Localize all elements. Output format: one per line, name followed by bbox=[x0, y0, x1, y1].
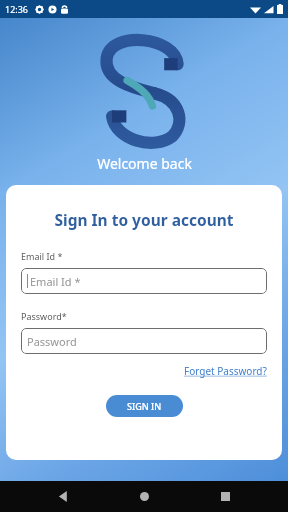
button[interactable]: Back bbox=[45, 481, 81, 512]
staticText: 12:36 bbox=[5, 3, 29, 15]
button[interactable]: Recent apps bbox=[207, 481, 243, 512]
button[interactable]: Password bbox=[21, 328, 267, 354]
staticText: Email Id * bbox=[21, 250, 63, 262]
staticText: SIGN IN bbox=[127, 400, 162, 412]
staticText: Forget Password? bbox=[184, 364, 267, 378]
button[interactable]: Home bbox=[126, 481, 162, 512]
button[interactable]: Forget Password? bbox=[184, 364, 267, 378]
button[interactable]: Email Id * bbox=[21, 268, 267, 294]
staticText: Email Id * bbox=[30, 274, 81, 289]
staticText: Sign In to your account bbox=[21, 209, 267, 230]
staticText: Welcome back bbox=[97, 154, 192, 173]
button[interactable]: SIGN IN bbox=[106, 395, 183, 417]
staticText: Password bbox=[27, 334, 77, 349]
staticText: Password* bbox=[21, 310, 67, 322]
